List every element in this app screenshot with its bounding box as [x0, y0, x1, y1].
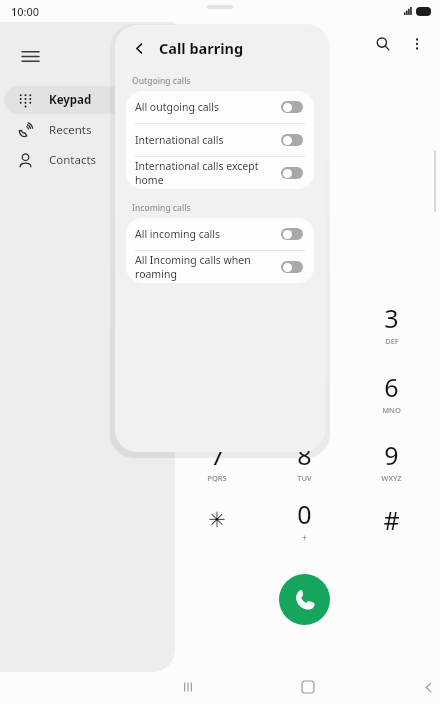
button[interactable]: Toggle	[281, 134, 303, 146]
button[interactable]: Back	[408, 670, 440, 704]
button[interactable]: ✳	[186, 493, 248, 547]
button[interactable]: #	[360, 493, 422, 547]
button[interactable]: Menu	[8, 34, 52, 78]
staticText: Contacts	[49, 152, 97, 168]
staticText: Incoming calls	[132, 202, 191, 214]
staticText: MNO	[382, 405, 401, 415]
button[interactable]: All Incoming calls when roaming	[126, 251, 314, 283]
button[interactable]: 9	[360, 433, 422, 487]
button[interactable]: Toggle	[281, 167, 303, 179]
button[interactable]: Search	[366, 27, 400, 61]
staticText: All Incoming calls when roaming	[135, 253, 275, 281]
button[interactable]: 2	[273, 296, 335, 350]
staticText: All incoming calls	[135, 227, 275, 241]
staticText: All outgoing calls	[135, 100, 275, 114]
staticText: +	[302, 532, 307, 543]
staticText: ✳	[208, 508, 226, 532]
staticText: 7	[210, 438, 225, 472]
staticText: PQRS	[207, 473, 227, 483]
button[interactable]: Keypad	[4, 86, 175, 114]
button[interactable]: International calls except home	[126, 157, 314, 189]
button[interactable]: Contacts	[4, 146, 175, 174]
button[interactable]: Recents	[168, 670, 208, 704]
staticText: TUV	[297, 473, 312, 483]
button[interactable]: 8	[273, 433, 335, 487]
button[interactable]: 3	[360, 296, 422, 350]
button[interactable]: 5	[273, 365, 335, 419]
button[interactable]: More options	[400, 27, 434, 61]
button[interactable]: Call	[279, 574, 330, 625]
staticText: Call barring	[159, 38, 244, 58]
button[interactable]: 6	[360, 365, 422, 419]
button[interactable]: Toggle	[281, 261, 303, 273]
staticText: #	[383, 503, 400, 537]
button[interactable]: 0	[273, 493, 335, 547]
staticText: WXYZ	[381, 473, 402, 483]
staticText: 3	[384, 301, 399, 335]
button[interactable]: Home	[288, 670, 328, 704]
button[interactable]: International calls	[126, 124, 314, 156]
button[interactable]: Recents	[4, 116, 175, 144]
button[interactable]: All outgoing calls	[126, 91, 314, 123]
button[interactable]: Toggle	[281, 228, 303, 240]
staticText: 8	[297, 438, 312, 472]
staticText: International calls except home	[135, 159, 275, 187]
button[interactable]: All incoming calls	[126, 218, 314, 250]
staticText: DEF	[385, 336, 399, 346]
staticText: International calls	[135, 133, 275, 147]
staticText: Recents	[49, 122, 92, 138]
staticText: Outgoing calls	[132, 75, 191, 87]
button[interactable]: Back	[128, 37, 150, 59]
button[interactable]: Toggle	[281, 101, 303, 113]
button[interactable]: 7	[186, 433, 248, 487]
staticText: 6	[384, 370, 399, 404]
staticText: 0	[297, 497, 312, 531]
staticText: 9	[384, 438, 399, 472]
staticText: Keypad	[49, 92, 92, 108]
staticText: 10:00	[11, 4, 40, 19]
